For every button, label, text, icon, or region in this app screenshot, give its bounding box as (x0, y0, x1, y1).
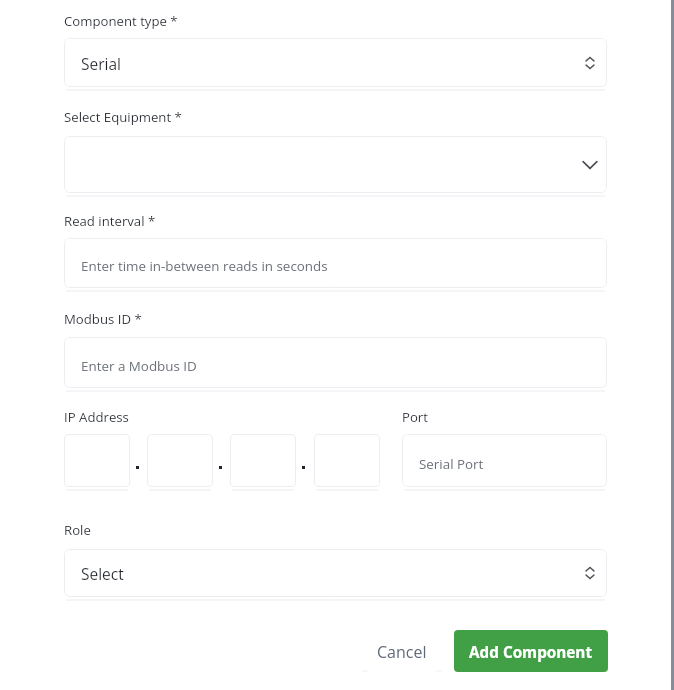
button[interactable]: Add Component (454, 630, 608, 672)
staticText: Serial Port (419, 455, 484, 473)
button[interactable]: Serial (64, 38, 607, 87)
staticText: Component type * (64, 12, 178, 30)
button[interactable]: Cancel (365, 630, 439, 672)
staticText: Enter time in-between reads in seconds (81, 257, 328, 275)
button[interactable]: Enter a Modbus ID (64, 337, 607, 388)
staticText: Enter a Modbus ID (81, 357, 197, 375)
staticText: IP Address (64, 408, 129, 426)
button[interactable] (147, 434, 213, 487)
staticText: Add Component (469, 642, 593, 663)
staticText: Select Equipment * (64, 108, 182, 126)
staticText: Role (64, 521, 91, 539)
button[interactable] (230, 434, 296, 487)
button[interactable]: Open equipment list (64, 136, 607, 193)
button[interactable] (64, 434, 130, 487)
other: Open equipment list (579, 154, 601, 176)
staticText: Read interval * (64, 212, 156, 230)
button[interactable] (314, 434, 380, 487)
staticText: Serial (81, 53, 121, 74)
staticText: Cancel (377, 641, 427, 663)
button[interactable]: Select (64, 549, 607, 597)
staticText: Select (81, 563, 124, 584)
other: Change role (579, 562, 601, 584)
staticText: Modbus ID * (64, 310, 142, 328)
staticText: Port (402, 408, 428, 426)
button[interactable]: Serial Port (402, 434, 607, 487)
other: Change component type (579, 52, 601, 74)
button[interactable]: Enter time in-between reads in seconds (64, 238, 607, 288)
